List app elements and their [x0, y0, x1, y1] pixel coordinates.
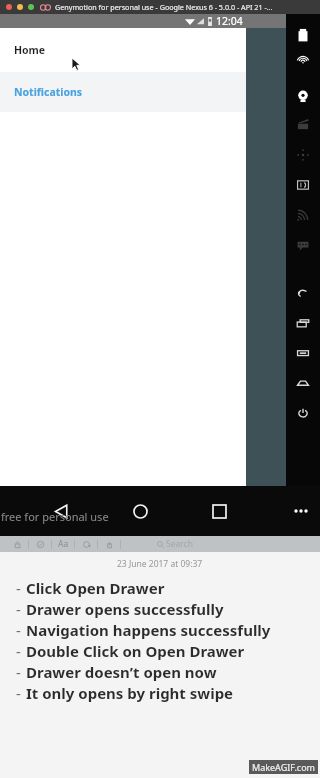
button[interactable]: Search [157, 538, 193, 550]
button[interactable]: Maximise [28, 4, 34, 10]
button[interactable]: Network [288, 200, 318, 230]
staticText: free for personal use [1, 509, 109, 524]
button[interactable]: Messages [288, 230, 318, 260]
button[interactable]: Aa [52, 536, 74, 552]
button[interactable]: Camera [288, 80, 318, 110]
button[interactable]: Recent apps [201, 493, 237, 529]
button[interactable]: Power [288, 398, 318, 428]
button[interactable]: Lock [6, 536, 28, 552]
button[interactable]: Navigation pad [288, 140, 318, 170]
staticText: Click Open Drawer [26, 578, 165, 598]
button[interactable]: Battery [288, 20, 318, 50]
button[interactable]: Back [288, 278, 318, 308]
button[interactable]: Home [0, 28, 246, 72]
staticText: - [16, 641, 21, 661]
staticText: MakeAGIF.com [252, 761, 315, 773]
staticText: Double Click on Open Drawer [26, 641, 245, 661]
button[interactable]: Notifications [0, 72, 246, 112]
button[interactable]: Close [6, 4, 12, 10]
staticText: Drawer opens successfully [26, 599, 224, 619]
button[interactable]: Home [122, 493, 158, 529]
staticText: - [16, 662, 21, 682]
button[interactable]: Minimise [17, 4, 23, 10]
staticText: Home [14, 43, 46, 57]
staticText: Drawer doesn’t open now [26, 662, 217, 682]
staticText: It only opens by right swipe [26, 683, 234, 703]
staticText: Navigation happens successfully [26, 620, 271, 640]
staticText: - [16, 683, 21, 703]
staticText: 12:04 [216, 14, 243, 28]
staticText: 23 June 2017 at 09:37 [117, 558, 203, 570]
button[interactable]: More options [288, 498, 314, 524]
button[interactable]: Share [98, 536, 120, 552]
staticText: Search [166, 538, 193, 550]
staticText: Notifications [14, 85, 83, 99]
button[interactable]: Reader [29, 536, 51, 552]
staticText: Genymotion for personal use - Google Nex… [55, 2, 273, 12]
button[interactable]: Privacy report [75, 536, 97, 552]
staticText: Aa [58, 538, 69, 550]
button[interactable]: ID [288, 170, 318, 200]
button[interactable]: Back [43, 493, 79, 529]
button[interactable]: Volume [288, 368, 318, 398]
button[interactable]: Rotate [288, 308, 318, 338]
staticText: - [16, 620, 21, 640]
button[interactable]: Video [288, 110, 318, 140]
staticText: - [16, 578, 21, 598]
staticText: - [16, 599, 21, 619]
button[interactable]: GPS [288, 50, 318, 80]
button[interactable]: Screenshot [288, 338, 318, 368]
